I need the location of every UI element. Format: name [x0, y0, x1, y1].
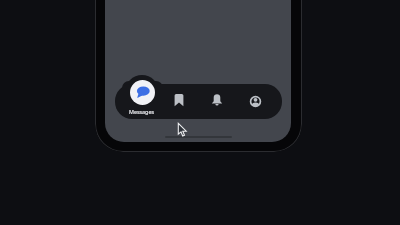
button[interactable]	[161, 84, 197, 118]
button[interactable]: Messages	[123, 75, 161, 115]
button[interactable]	[237, 84, 273, 118]
button[interactable]	[199, 84, 235, 118]
staticText: Messages	[129, 108, 155, 115]
